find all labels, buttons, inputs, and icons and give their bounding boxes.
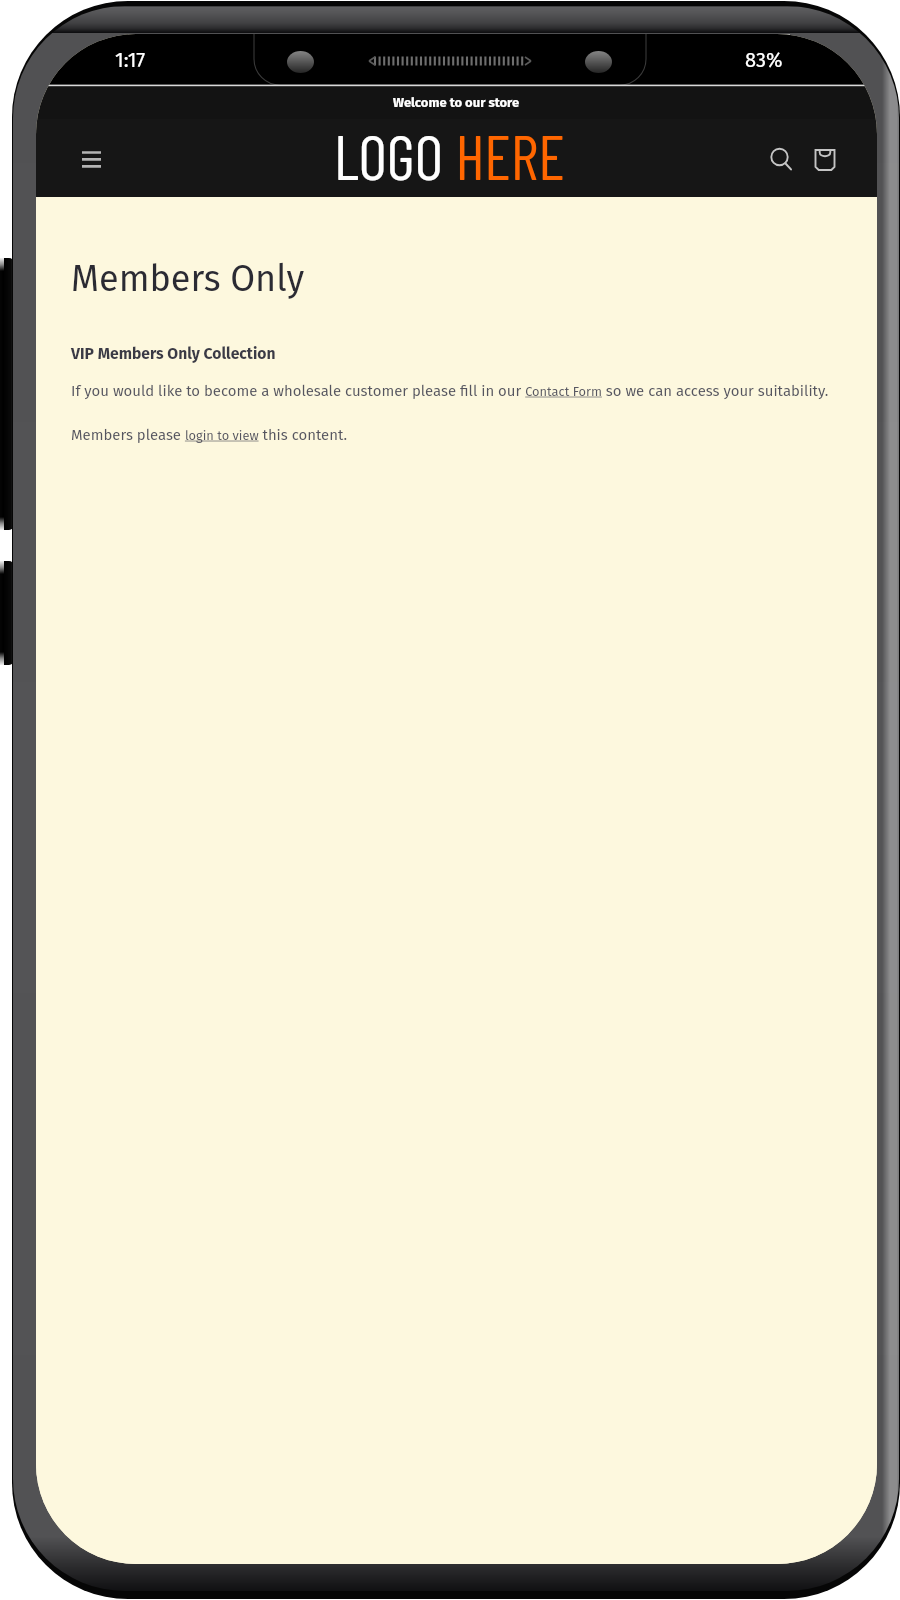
- staticText: 83%: [745, 48, 783, 72]
- button[interactable]: Search: [760, 138, 803, 181]
- button[interactable]: Menu: [68, 136, 114, 182]
- staticText: Members please login to view this conten…: [71, 426, 347, 444]
- staticText: Members Only: [71, 257, 305, 300]
- staticText: LOGO HERE: [334, 118, 565, 192]
- staticText: If you would like to become a wholesale …: [71, 382, 829, 400]
- button[interactable]: Cart: [803, 138, 846, 181]
- staticText: Welcome to our store: [393, 95, 520, 111]
- staticText: 1:17: [115, 48, 146, 72]
- staticText: VIP Members Only Collection: [71, 344, 276, 363]
